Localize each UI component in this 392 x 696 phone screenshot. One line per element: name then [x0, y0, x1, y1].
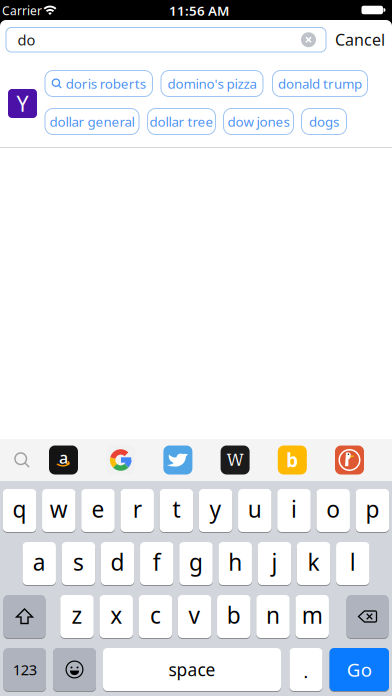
- button[interactable]: k: [297, 542, 330, 585]
- button[interactable]: Yahoo search: [8, 89, 37, 118]
- staticText: v: [189, 600, 201, 630]
- staticText: donald trump: [278, 75, 362, 92]
- staticText: b: [227, 600, 241, 630]
- button[interactable]: q: [3, 489, 36, 532]
- button[interactable]: l: [336, 542, 370, 585]
- staticText: i: [291, 494, 297, 524]
- staticText: a: [59, 447, 68, 468]
- staticText: q: [13, 494, 27, 524]
- button[interactable]: dow jones: [223, 108, 294, 135]
- staticText: dollar general: [49, 113, 134, 130]
- button[interactable]: p: [356, 489, 389, 532]
- button[interactable]: donald trump: [272, 70, 368, 97]
- button[interactable]: r: [120, 489, 154, 532]
- staticText: Y: [16, 89, 28, 118]
- button[interactable]: Emoji: [53, 648, 96, 691]
- button[interactable]: g: [179, 542, 213, 585]
- staticText: dow jones: [227, 113, 289, 130]
- button[interactable]: m: [295, 595, 329, 638]
- staticText: d: [111, 547, 125, 577]
- button[interactable]: Cancel: [328, 26, 392, 52]
- staticText: e: [91, 494, 104, 524]
- button[interactable]: n: [256, 595, 290, 638]
- staticText: domino's pizza: [167, 75, 256, 92]
- button[interactable]: Shift: [3, 595, 45, 638]
- staticText: n: [266, 600, 280, 630]
- staticText: u: [248, 494, 262, 524]
- staticText: Cancel: [335, 29, 385, 50]
- staticText: Go: [347, 657, 372, 682]
- button[interactable]: dollar tree: [147, 108, 216, 135]
- button[interactable]: Search with Wikipedia: [221, 445, 250, 474]
- staticText: 11:56 AM: [169, 2, 229, 19]
- staticText: doris roberts: [66, 75, 146, 92]
- button[interactable]: y: [199, 489, 232, 532]
- staticText: h: [228, 547, 242, 577]
- button[interactable]: Delete: [346, 595, 388, 638]
- staticText: dogs: [309, 113, 339, 130]
- button[interactable]: Search with DuckDuckGo: [335, 445, 364, 474]
- button[interactable]: Search with Amazon: [49, 445, 78, 474]
- staticText: r: [133, 494, 142, 524]
- button[interactable]: x: [99, 595, 133, 638]
- staticText: z: [71, 600, 82, 630]
- staticText: t: [172, 494, 180, 524]
- button[interactable]: domino's pizza: [160, 70, 263, 97]
- button[interactable]: a: [22, 542, 56, 585]
- button[interactable]: o: [316, 489, 350, 532]
- staticText: c: [150, 600, 161, 630]
- button[interactable]: .: [289, 648, 322, 691]
- button[interactable]: h: [218, 542, 252, 585]
- button[interactable]: space: [103, 648, 281, 691]
- staticText: a: [33, 547, 46, 577]
- staticText: f: [153, 547, 161, 577]
- button[interactable]: c: [139, 595, 172, 638]
- staticText: x: [110, 600, 122, 630]
- staticText: p: [365, 494, 379, 524]
- button[interactable]: dollar general: [44, 108, 139, 135]
- button[interactable]: Clear text: [301, 32, 316, 47]
- staticText: s: [73, 547, 84, 577]
- button[interactable]: s: [62, 542, 95, 585]
- button[interactable]: Search with Google: [106, 445, 135, 474]
- staticText: b: [286, 448, 298, 472]
- button[interactable]: v: [178, 595, 211, 638]
- button[interactable]: Search or enter address: [5, 27, 326, 52]
- button[interactable]: Search: [7, 445, 37, 475]
- staticText: k: [308, 547, 320, 577]
- button[interactable]: j: [258, 542, 291, 585]
- staticText: l: [350, 547, 356, 577]
- button[interactable]: Go: [329, 648, 389, 691]
- staticText: g: [189, 547, 203, 577]
- staticText: j: [271, 547, 277, 577]
- button[interactable]: Search with Twitter: [163, 445, 192, 474]
- button[interactable]: Search with Bing: [278, 445, 307, 474]
- staticText: y: [210, 494, 222, 524]
- button[interactable]: Numbers: [3, 648, 46, 691]
- staticText: .: [303, 660, 308, 683]
- staticText: space: [168, 658, 215, 681]
- button[interactable]: t: [160, 489, 193, 532]
- button[interactable]: z: [60, 595, 94, 638]
- button[interactable]: f: [140, 542, 174, 585]
- button[interactable]: d: [101, 542, 134, 585]
- staticText: do: [17, 30, 35, 49]
- staticText: W: [227, 450, 244, 470]
- button[interactable]: u: [238, 489, 272, 532]
- staticText: 123: [13, 660, 37, 679]
- button[interactable]: i: [277, 489, 311, 532]
- button[interactable]: doris roberts: [44, 70, 153, 97]
- button[interactable]: e: [81, 489, 115, 532]
- staticText: o: [326, 494, 340, 524]
- button[interactable]: b: [217, 595, 251, 638]
- staticText: m: [302, 600, 323, 630]
- staticText: dollar tree: [149, 113, 213, 130]
- staticText: w: [50, 494, 68, 524]
- button[interactable]: dogs: [301, 108, 347, 135]
- staticText: Carrier: [2, 2, 42, 18]
- button[interactable]: w: [42, 489, 76, 532]
